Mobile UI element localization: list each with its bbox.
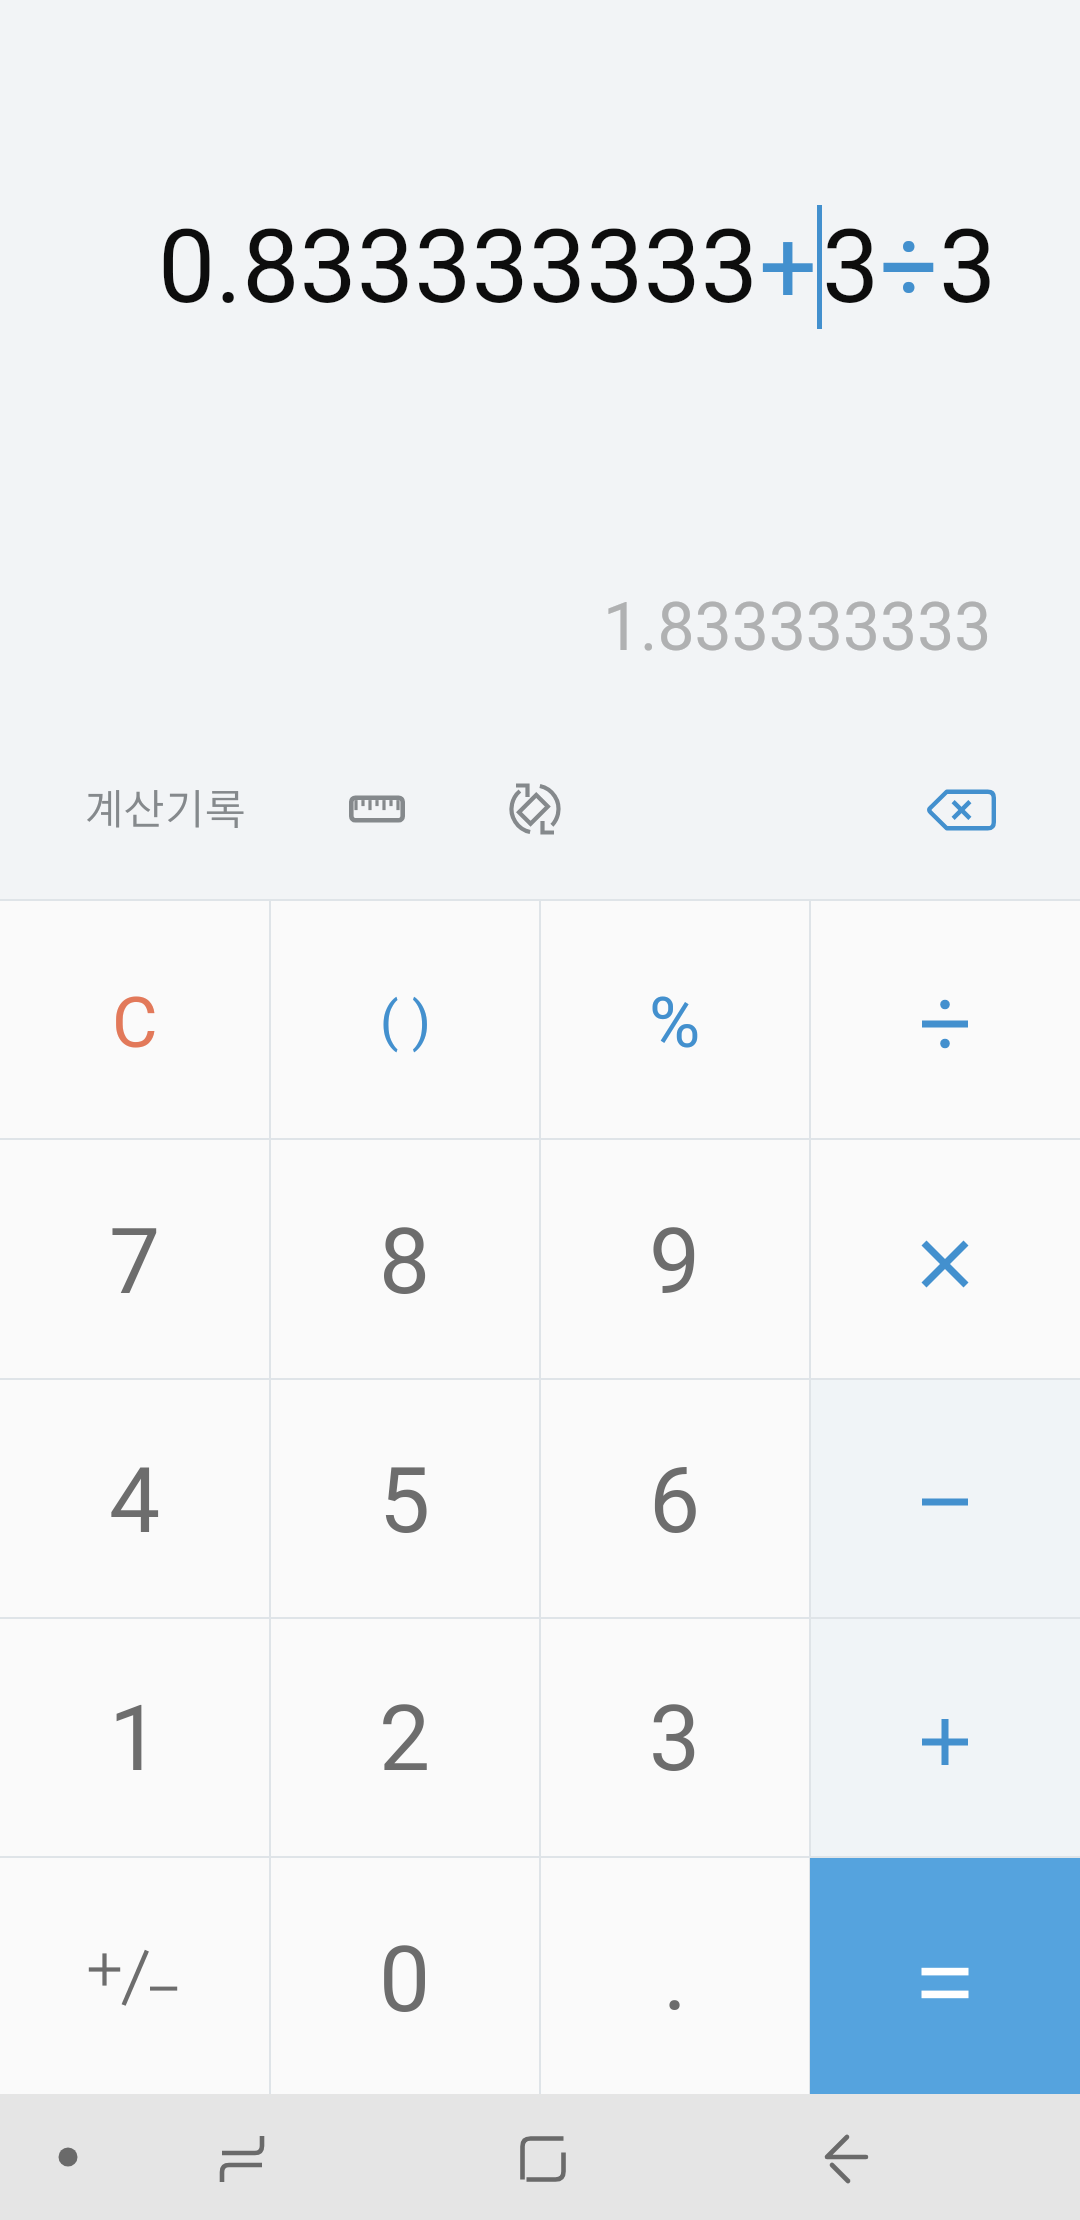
button[interactable]: More options xyxy=(0,2094,136,2220)
button[interactable]: 0 xyxy=(270,1855,540,2094)
button[interactable]: 6 xyxy=(540,1378,810,1617)
staticText: 3 xyxy=(649,1686,701,1793)
button[interactable]: 9 xyxy=(540,1139,810,1378)
button[interactable]: Rotate screen xyxy=(481,755,589,863)
button[interactable]: Divide xyxy=(810,900,1080,1139)
button[interactable]: 3 xyxy=(540,1616,810,1855)
button[interactable]: Backspace xyxy=(907,755,1015,863)
staticText: 8 xyxy=(379,1209,431,1316)
staticText: ÷ xyxy=(880,207,939,327)
button[interactable]: C xyxy=(0,900,270,1139)
staticText: ( ) xyxy=(380,990,431,1053)
button[interactable]: 2 xyxy=(270,1616,540,1855)
button[interactable]: Add xyxy=(810,1616,1080,1855)
button[interactable]: 계산기록 xyxy=(66,768,264,854)
staticText: + xyxy=(759,207,817,327)
staticText: 5 xyxy=(379,1448,431,1555)
staticText: 6 xyxy=(649,1448,701,1555)
button[interactable]: 8 xyxy=(270,1139,540,1378)
staticText: 9 xyxy=(649,1209,701,1316)
button[interactable]: Unit converter xyxy=(323,755,431,863)
button[interactable]: Recent apps xyxy=(136,2094,348,2220)
staticText: % xyxy=(649,982,701,1064)
staticText: 7 xyxy=(109,1209,161,1316)
staticText: C xyxy=(112,982,158,1064)
button[interactable]: % xyxy=(540,900,810,1139)
button[interactable]: ( ) xyxy=(270,900,540,1139)
button[interactable]: 1 xyxy=(0,1616,270,1855)
staticText: 3 xyxy=(939,207,997,327)
button[interactable]: Equals xyxy=(810,1855,1080,2094)
staticText: 4 xyxy=(109,1448,161,1555)
button[interactable]: Back xyxy=(741,2094,951,2220)
button[interactable]: . xyxy=(540,1855,810,2094)
staticText: 1 xyxy=(109,1686,161,1793)
staticText: 2 xyxy=(379,1686,431,1793)
button[interactable]: Multiply xyxy=(810,1139,1080,1378)
button[interactable]: 4 xyxy=(0,1378,270,1617)
button[interactable]: 5 xyxy=(270,1378,540,1617)
button[interactable]: Plus minus xyxy=(0,1855,270,2094)
staticText: 0.833333333 xyxy=(158,207,759,327)
staticText: 3 xyxy=(822,207,880,327)
staticText: 계산기록 xyxy=(84,790,246,832)
button[interactable]: 7 xyxy=(0,1139,270,1378)
staticText: . xyxy=(663,1925,687,2032)
staticText: 0 xyxy=(379,1927,431,2034)
button[interactable]: Subtract xyxy=(810,1378,1080,1617)
staticText: 1.833333333 xyxy=(603,589,992,666)
button[interactable]: Home xyxy=(438,2094,648,2220)
